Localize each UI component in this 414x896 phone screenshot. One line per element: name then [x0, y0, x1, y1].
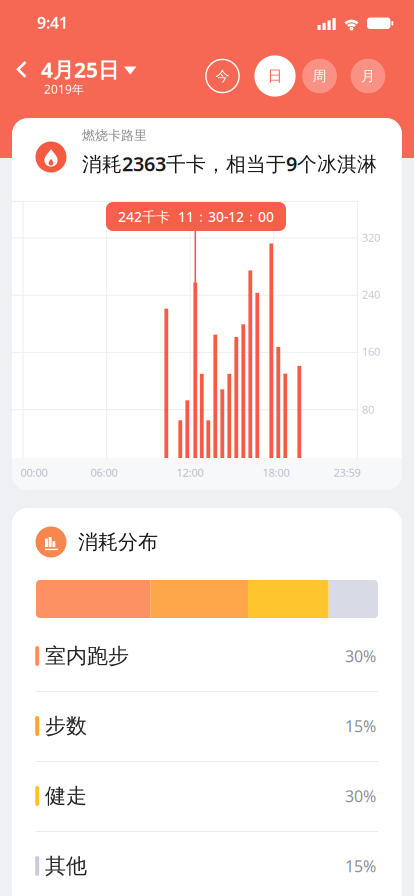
- staticText: 2019年: [44, 81, 84, 97]
- staticText: 242千卡 11：30-12：00: [118, 207, 274, 226]
- staticText: 今: [215, 67, 229, 85]
- button[interactable]: 日: [254, 55, 296, 97]
- staticText: 240: [362, 287, 380, 302]
- staticText: 健走: [45, 783, 87, 809]
- staticText: 06:00: [90, 465, 117, 480]
- button[interactable]: Back: [12, 58, 36, 82]
- button[interactable]: 周: [302, 59, 337, 93]
- staticText: 步数: [45, 713, 87, 739]
- staticText: 23:59: [333, 465, 360, 480]
- staticText: 30%: [345, 785, 376, 807]
- staticText: 15%: [345, 855, 376, 877]
- staticText: 消耗2363千卡，相当于9个冰淇淋: [82, 150, 377, 177]
- staticText: 15%: [345, 715, 376, 737]
- staticText: 18:00: [262, 465, 289, 480]
- staticText: 12:00: [176, 465, 203, 480]
- staticText: 日: [267, 67, 282, 85]
- staticText: 周: [313, 67, 327, 85]
- staticText: 80: [362, 402, 374, 417]
- staticText: 9:41: [37, 12, 68, 33]
- button[interactable]: 月: [351, 59, 385, 93]
- staticText: 320: [362, 230, 380, 245]
- staticText: 00:00: [20, 465, 47, 480]
- staticText: 其他: [45, 853, 87, 879]
- button[interactable]: 今: [205, 59, 240, 93]
- staticText: 月: [361, 67, 375, 85]
- button[interactable]: 4月25日: [41, 56, 141, 98]
- staticText: 燃烧卡路里: [82, 127, 147, 143]
- staticText: 160: [362, 344, 380, 359]
- staticText: 30%: [345, 645, 376, 667]
- staticText: 消耗分布: [78, 530, 158, 554]
- staticText: 室内跑步: [45, 643, 129, 669]
- staticText: 4月25日: [41, 56, 119, 83]
